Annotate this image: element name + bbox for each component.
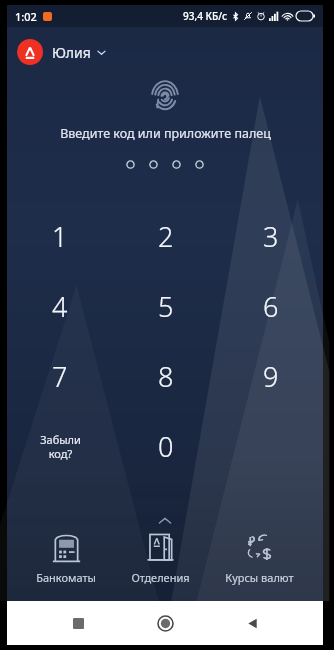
staticText: Введите код или приложите палец: [60, 125, 271, 142]
staticText: 0: [158, 428, 174, 465]
button[interactable]: Юлия: [17, 37, 115, 67]
staticText: 2: [158, 218, 174, 255]
staticText: Забыли код?: [40, 432, 81, 461]
staticText: 9: [263, 358, 279, 395]
button[interactable]: 4: [7, 284, 113, 328]
staticText: 7: [52, 358, 68, 395]
button[interactable]: 5: [113, 284, 218, 328]
button[interactable]: 2: [113, 214, 218, 258]
button[interactable]: 0: [113, 424, 218, 468]
button[interactable]: 8: [113, 354, 218, 398]
staticText: 93,4 КБ/c: [183, 9, 227, 23]
staticText: 3: [263, 218, 279, 255]
button[interactable]: 1: [7, 214, 113, 258]
staticText: Юлия: [52, 43, 91, 62]
button[interactable]: Home: [146, 604, 184, 642]
button[interactable]: Currency rates: [219, 530, 300, 587]
button[interactable]: Branches: [125, 530, 196, 587]
staticText: 6: [263, 288, 279, 325]
staticText: 8: [158, 358, 174, 395]
staticText: Банкоматы: [36, 570, 96, 585]
staticText: 1: [52, 218, 68, 255]
staticText: 4: [52, 288, 68, 325]
button[interactable]: 6: [218, 284, 323, 328]
button[interactable]: Fingerprint unlock: [148, 79, 182, 113]
staticText: 5: [158, 288, 174, 325]
button[interactable]: 3: [218, 214, 323, 258]
staticText: Курсы валют: [225, 570, 294, 585]
button[interactable]: Recents: [59, 604, 97, 642]
button[interactable]: Back: [233, 604, 271, 642]
button[interactable]: 7: [7, 354, 113, 398]
button[interactable]: ATMs: [30, 530, 102, 587]
staticText: 1:02: [15, 9, 37, 24]
staticText: Отделения: [131, 570, 190, 585]
button[interactable]: 9: [218, 354, 323, 398]
button[interactable]: Забыли код?: [7, 424, 113, 468]
